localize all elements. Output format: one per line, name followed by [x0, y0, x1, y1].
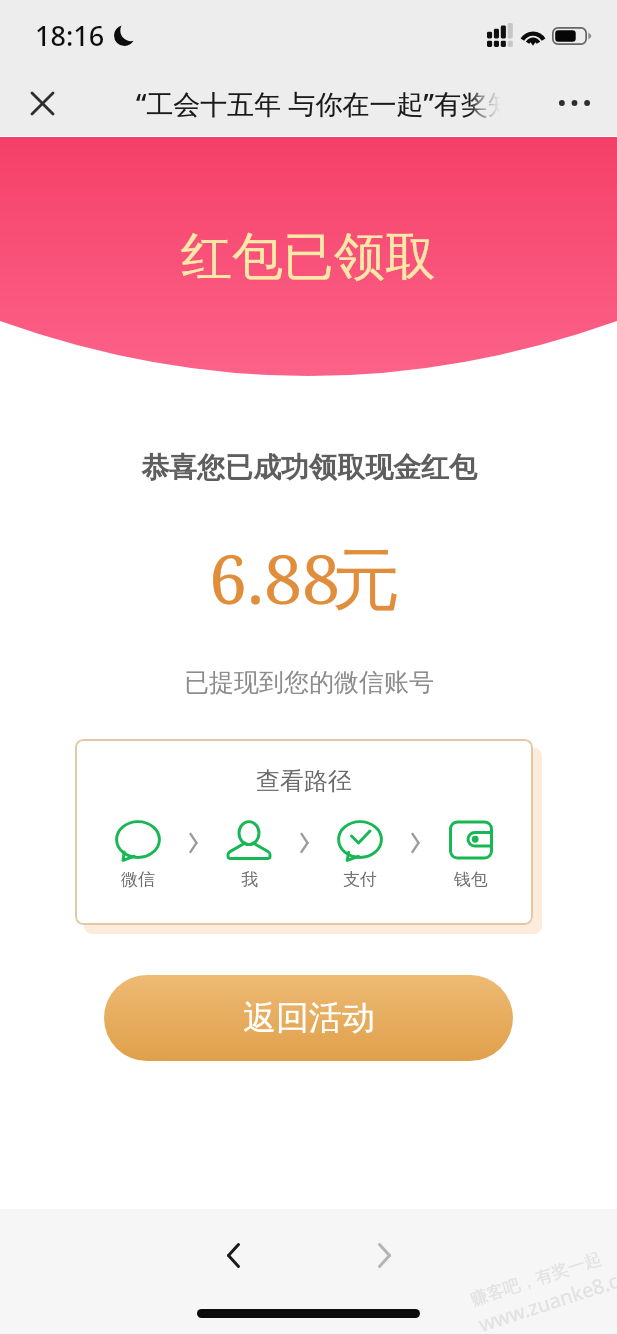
- staticText: 返回活动: [243, 997, 375, 1039]
- staticText: 微信: [121, 869, 155, 890]
- button[interactable]: 返回活动: [104, 975, 513, 1061]
- staticText: 查看路径: [256, 766, 352, 796]
- button[interactable]: Close: [19, 80, 65, 126]
- staticText: 钱包: [454, 869, 488, 890]
- staticText: 我: [241, 869, 258, 890]
- staticText: 元: [332, 538, 400, 624]
- button[interactable]: Forward: [354, 1225, 414, 1285]
- button[interactable]: More options: [551, 80, 597, 126]
- staticText: www.zuanke8.com: [475, 1264, 617, 1334]
- staticText: 已提现到您的微信账号: [184, 667, 434, 698]
- staticText: “工会十五年 与你在一起”有奖知识: [136, 85, 526, 122]
- staticText: 支付: [343, 869, 377, 890]
- staticText: 18:16: [35, 17, 105, 54]
- button[interactable]: Back: [203, 1225, 263, 1285]
- staticText: 赚客吧，有奖一起赚！: [468, 1242, 617, 1310]
- staticText: 6.88: [209, 531, 341, 624]
- staticText: 红包已领取: [181, 225, 436, 289]
- staticText: 恭喜您已成功领取现金红包: [141, 450, 477, 485]
